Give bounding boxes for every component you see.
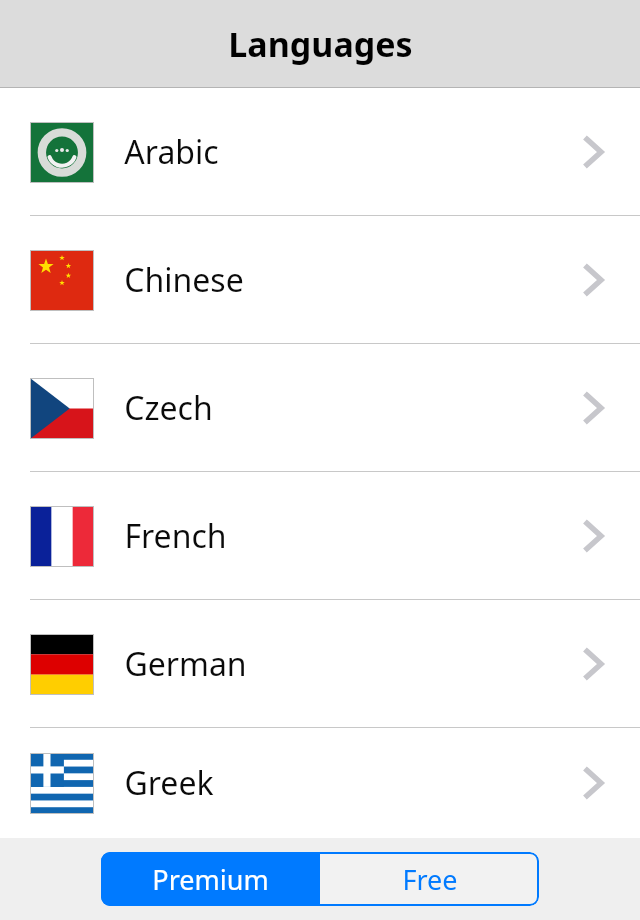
- staticText: Chinese: [124, 258, 244, 302]
- staticText: French: [124, 514, 227, 558]
- button[interactable]: French: [0, 472, 640, 600]
- button[interactable]: German: [0, 600, 640, 728]
- button[interactable]: Arabic: [0, 88, 640, 216]
- other: Open Arabic: [570, 128, 618, 176]
- staticText: Czech: [124, 386, 213, 430]
- staticText: German: [124, 642, 247, 686]
- other: Open Chinese: [570, 256, 618, 304]
- staticText: Greek: [124, 761, 214, 805]
- staticText: Premium: [152, 861, 269, 898]
- button[interactable]: Free: [320, 852, 539, 906]
- staticText: Arabic: [124, 130, 219, 174]
- button[interactable]: Greek: [0, 728, 640, 838]
- staticText: Free: [402, 861, 458, 898]
- other: Open Greek: [570, 759, 618, 807]
- other: Open German: [570, 640, 618, 688]
- button[interactable]: Premium: [101, 852, 320, 906]
- button[interactable]: Chinese: [0, 216, 640, 344]
- other: Open French: [570, 512, 618, 560]
- staticText: Languages: [228, 21, 413, 67]
- other: Open Czech: [570, 384, 618, 432]
- button[interactable]: Czech: [0, 344, 640, 472]
